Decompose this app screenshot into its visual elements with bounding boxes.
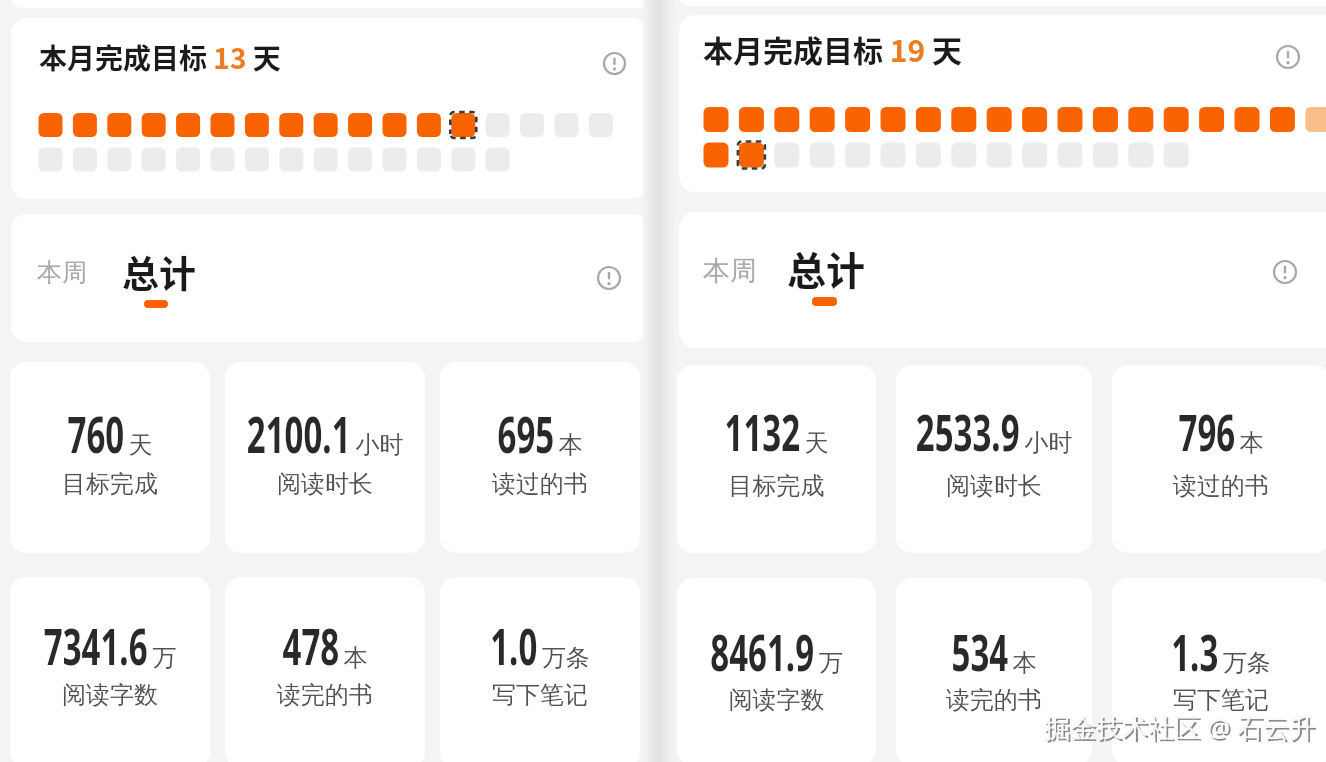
- staticText: 本周: [37, 257, 87, 288]
- button[interactable]: [1270, 257, 1300, 287]
- button[interactable]: [677, 365, 876, 553]
- button[interactable]: [1112, 578, 1326, 762]
- button[interactable]: [225, 577, 425, 762]
- button[interactable]: 本周: [37, 257, 87, 288]
- button[interactable]: [600, 49, 629, 78]
- button[interactable]: [677, 578, 876, 762]
- button[interactable]: [679, 15, 1326, 192]
- button[interactable]: [896, 578, 1092, 762]
- button[interactable]: [10, 577, 210, 762]
- button[interactable]: [10, 362, 210, 553]
- staticText: 总计: [787, 240, 866, 296]
- button[interactable]: [440, 362, 640, 553]
- button[interactable]: [594, 263, 624, 293]
- button[interactable]: [1273, 42, 1303, 72]
- button[interactable]: 本周: [703, 254, 757, 288]
- button[interactable]: 总计: [787, 240, 866, 296]
- staticText: 本月完成目标 13 天: [39, 37, 281, 78]
- staticText: 本周: [703, 254, 757, 288]
- button[interactable]: [11, 18, 648, 199]
- staticText: 本月完成目标 19 天: [703, 27, 963, 70]
- button[interactable]: 总计: [122, 245, 196, 299]
- button[interactable]: [440, 577, 640, 762]
- staticText: 总计: [122, 245, 196, 299]
- button[interactable]: [1112, 365, 1326, 553]
- staticText: 掘金技术社区 @ 石云升: [1046, 711, 1317, 747]
- button[interactable]: [896, 365, 1092, 553]
- button[interactable]: [225, 362, 425, 553]
- staticText: 掘金技术社区 @ 石云升: [1044, 709, 1315, 745]
